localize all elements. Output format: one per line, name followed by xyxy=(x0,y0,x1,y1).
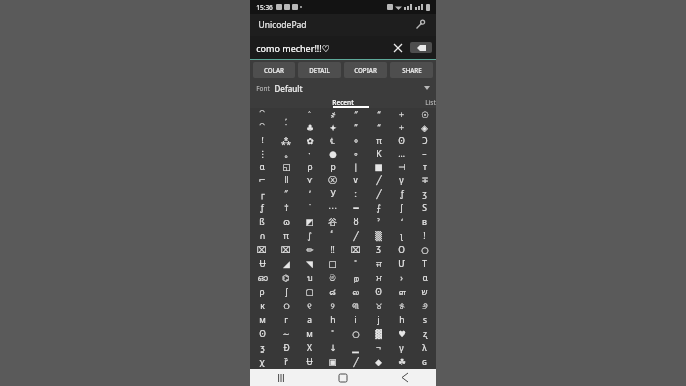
button[interactable]: 谷 xyxy=(321,215,344,229)
button[interactable]: ⌬ xyxy=(274,271,298,285)
button[interactable]: Home xyxy=(312,369,374,386)
button[interactable]: і xyxy=(344,313,367,327)
button[interactable]: “ xyxy=(367,121,390,134)
button[interactable]: һ xyxy=(321,313,344,327)
button[interactable]: Ɖ xyxy=(274,341,298,355)
button[interactable]: ɢ xyxy=(413,355,436,369)
button[interactable]: һ xyxy=(390,313,413,327)
button[interactable]: π xyxy=(367,134,390,147)
button[interactable]: ɷ xyxy=(274,215,298,229)
button[interactable]: м xyxy=(250,313,274,327)
button[interactable]: ◆ xyxy=(367,355,390,369)
button[interactable]: т xyxy=(413,160,436,173)
button[interactable]: ๘ xyxy=(321,285,344,299)
button[interactable]: List xyxy=(381,96,436,108)
button[interactable]: ʼ xyxy=(298,187,321,201)
button[interactable]: DETAIL xyxy=(298,62,341,78)
button[interactable]: ˚ xyxy=(321,327,344,341)
button[interactable]: ˀ xyxy=(367,215,390,229)
button[interactable]: ୬ xyxy=(413,299,436,313)
button[interactable]: “ xyxy=(367,108,390,121)
button[interactable]: ¬ xyxy=(367,341,390,355)
button[interactable]: ◥ xyxy=(298,257,321,271)
button[interactable]: ◱ xyxy=(274,160,298,173)
button[interactable]: γ xyxy=(390,173,413,187)
button[interactable]: □ xyxy=(321,257,344,271)
button[interactable]: ǁ xyxy=(274,173,298,187)
button[interactable]: ↓ xyxy=(321,341,344,355)
button[interactable]: ∼ xyxy=(274,327,298,341)
button[interactable]: ∨ xyxy=(344,173,367,187)
button[interactable]: › xyxy=(390,271,413,285)
button[interactable]: ˙ xyxy=(298,201,321,215)
button[interactable]: ♣ xyxy=(298,121,321,134)
button[interactable]: ୪ xyxy=(367,299,390,313)
button[interactable]: ∓ xyxy=(413,173,436,187)
button[interactable]: Recent xyxy=(304,96,381,108)
button[interactable]: ✦ xyxy=(321,121,344,134)
button[interactable]: Ʉ xyxy=(298,355,321,369)
button[interactable]: Ʉ xyxy=(250,257,274,271)
button[interactable]: ＋ xyxy=(390,108,413,121)
button[interactable]: ◢ xyxy=(274,257,298,271)
button[interactable]: Font xyxy=(256,80,430,96)
button[interactable]: ℄ xyxy=(321,134,344,147)
button[interactable]: ȣ xyxy=(344,215,367,229)
button[interactable]: Ѕ xyxy=(413,201,436,215)
button[interactable]: ✿ xyxy=(298,134,321,147)
button[interactable]: ̦ xyxy=(274,108,298,121)
button[interactable]: Т xyxy=(413,257,436,271)
button[interactable]: ■ xyxy=(367,160,390,173)
button[interactable]: Ο xyxy=(390,243,413,257)
button[interactable]: ⁀ xyxy=(250,108,274,121)
button[interactable]: ҂ xyxy=(321,108,344,121)
button[interactable]: ʃ xyxy=(274,285,298,299)
button[interactable]: ˙ xyxy=(274,121,298,134)
button[interactable]: COPIAR xyxy=(344,62,387,78)
button[interactable]: ୨ xyxy=(321,299,344,313)
button[interactable]: … xyxy=(390,147,413,160)
button[interactable]: ற xyxy=(344,271,367,285)
button[interactable]: ρ xyxy=(298,160,321,173)
button[interactable]: ！ xyxy=(250,134,274,147)
button[interactable]: Ʒ xyxy=(367,243,390,257)
button[interactable]: ƒ xyxy=(250,201,274,215)
button[interactable]: ▒ xyxy=(367,229,390,243)
button[interactable]: ⊣ xyxy=(390,160,413,173)
button[interactable]: ” xyxy=(344,121,367,134)
button[interactable]: ʘ xyxy=(367,285,390,299)
button[interactable]: ๎ xyxy=(321,229,344,243)
button[interactable]: ○ xyxy=(413,243,436,257)
button[interactable]: – xyxy=(413,147,436,160)
button[interactable]: χ xyxy=(250,355,274,369)
button[interactable]: SHARE xyxy=(390,62,433,78)
button[interactable]: ‼ xyxy=(321,243,344,257)
button[interactable]: ⌧ xyxy=(274,243,298,257)
button[interactable]: ⁀ xyxy=(250,121,274,134)
button[interactable]: ◩ xyxy=(298,215,321,229)
button[interactable]: ୫ xyxy=(390,299,413,313)
button[interactable]: ╱ xyxy=(367,173,390,187)
button[interactable]: ∩ xyxy=(250,229,274,243)
button[interactable]: ༚ xyxy=(274,147,298,160)
button[interactable]: а xyxy=(298,313,321,327)
button[interactable]: ∫ xyxy=(298,229,321,243)
button[interactable]: ʘ xyxy=(250,327,274,341)
button[interactable]: ☘ xyxy=(390,355,413,369)
button[interactable]: ✏ xyxy=(298,243,321,257)
button[interactable]: Clear xyxy=(390,40,406,56)
button[interactable]: ⋎ xyxy=(298,173,321,187)
button[interactable]: † xyxy=(274,201,298,215)
button[interactable]: ∘ xyxy=(344,147,367,160)
button[interactable]: ƺ xyxy=(250,341,274,355)
button[interactable]: ഓ xyxy=(250,271,274,285)
button[interactable]: р xyxy=(321,160,344,173)
button[interactable]: Ɔ xyxy=(413,134,436,147)
button[interactable]: ਮ xyxy=(367,271,390,285)
button[interactable]: ⋮ xyxy=(250,147,274,160)
button[interactable]: Settings xyxy=(412,17,428,33)
button[interactable]: ୦ xyxy=(274,299,298,313)
button[interactable]: Ƙ xyxy=(367,147,390,160)
button[interactable]: ਜ xyxy=(367,257,390,271)
button[interactable]: ╱ xyxy=(367,187,390,201)
